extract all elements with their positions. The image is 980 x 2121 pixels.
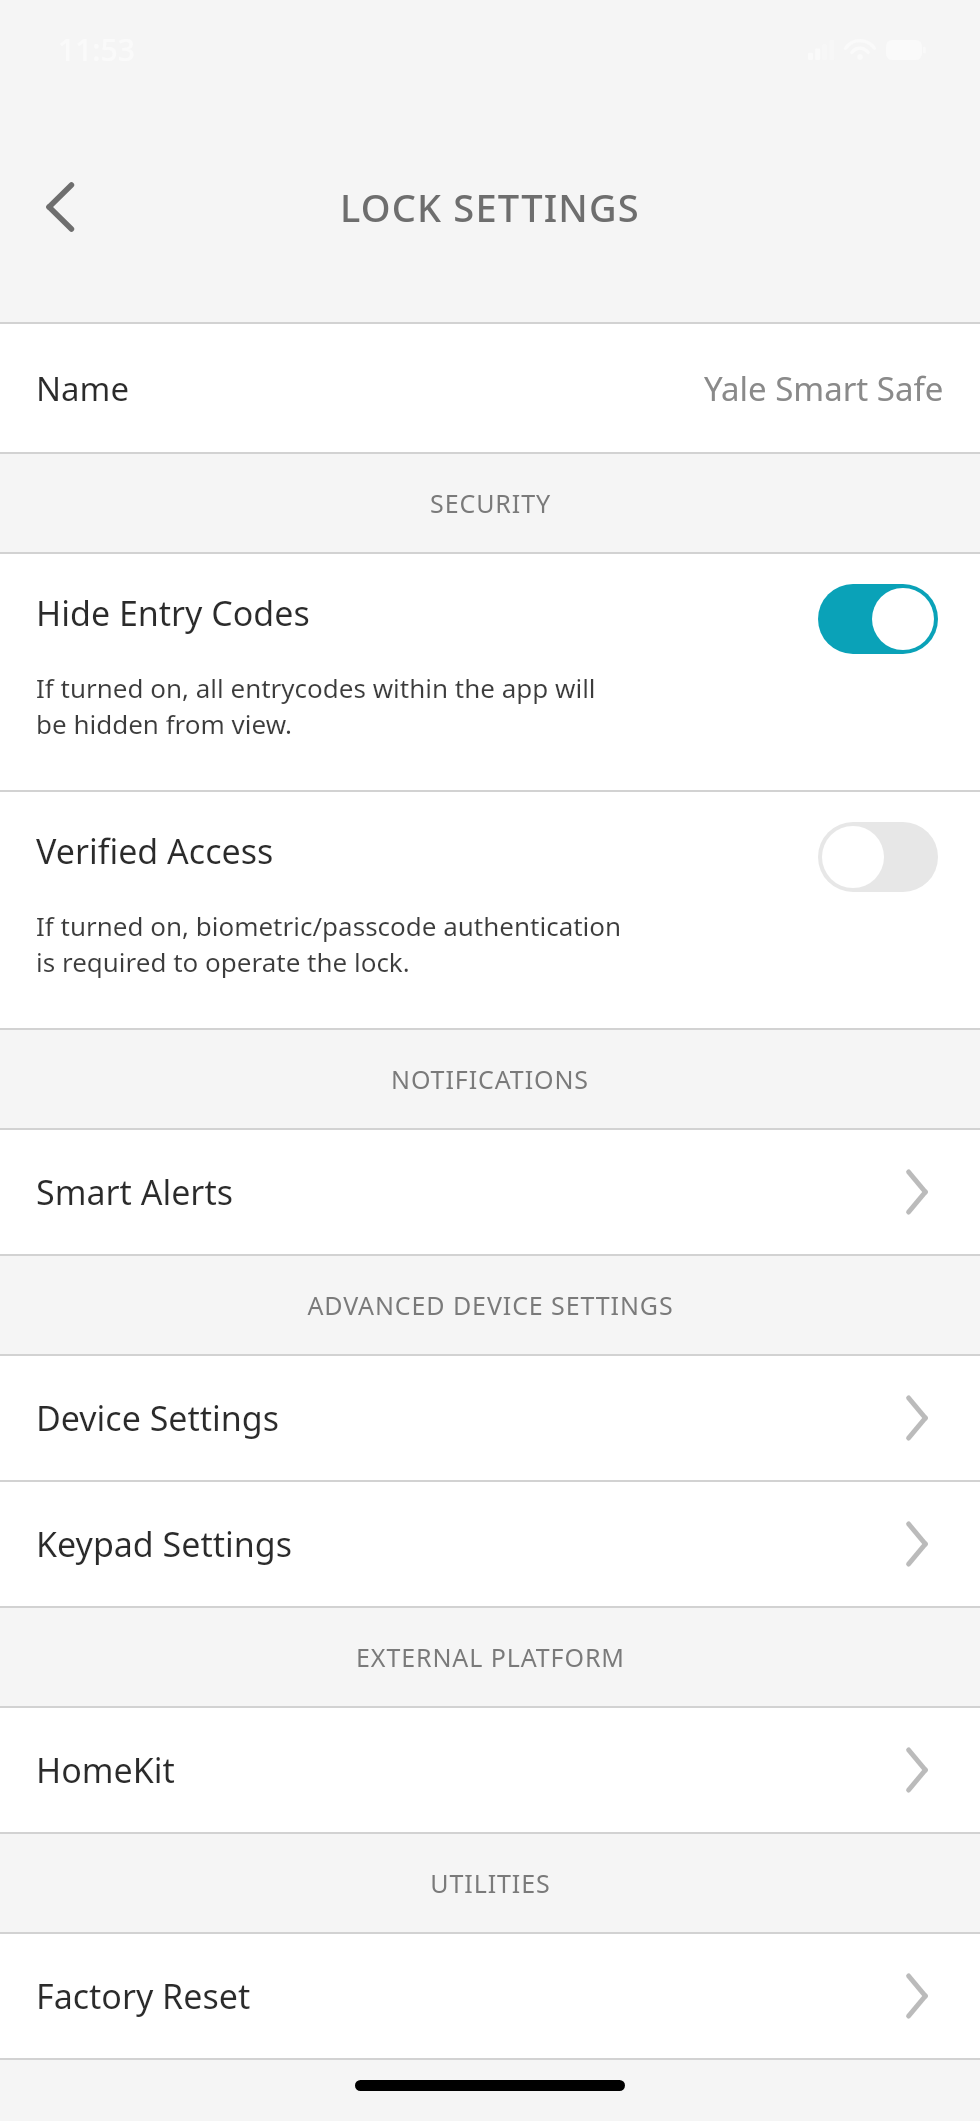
staticText: HomeKit: [36, 1747, 175, 1793]
staticText: Device Settings: [36, 1395, 280, 1441]
button[interactable]: Toggle off: [818, 822, 938, 892]
staticText: Verified Access: [36, 828, 274, 874]
staticText: Yale Smart Safe: [704, 366, 944, 411]
button[interactable]: Device Settings: [0, 1356, 980, 1480]
button[interactable]: Hide Entry Codes: [0, 554, 980, 790]
staticText: LOCK SETTINGS: [340, 181, 640, 233]
staticText: Factory Reset: [36, 1973, 251, 2019]
staticText: If turned on, biometric/passcode authent…: [36, 908, 622, 980]
button[interactable]: Back: [20, 167, 100, 247]
button[interactable]: Toggle on: [818, 584, 938, 654]
button[interactable]: Keypad Settings: [0, 1482, 980, 1606]
staticText: Smart Alerts: [36, 1169, 233, 1215]
button[interactable]: HomeKit: [0, 1708, 980, 1832]
staticText: SECURITY: [430, 486, 551, 520]
staticText: UTILITIES: [430, 1866, 551, 1900]
button[interactable]: Factory Reset: [0, 1934, 980, 2058]
staticText: If turned on, all entrycodes within the …: [36, 670, 596, 742]
staticText: NOTIFICATIONS: [391, 1062, 589, 1096]
staticText: EXTERNAL PLATFORM: [356, 1640, 625, 1674]
staticText: ADVANCED DEVICE SETTINGS: [307, 1288, 674, 1322]
button[interactable]: Smart Alerts: [0, 1130, 980, 1254]
staticText: Name: [36, 366, 130, 411]
staticText: Hide Entry Codes: [36, 590, 310, 636]
button[interactable]: Name: [0, 324, 980, 452]
staticText: Keypad Settings: [36, 1521, 292, 1567]
button[interactable]: Verified Access: [0, 792, 980, 1028]
